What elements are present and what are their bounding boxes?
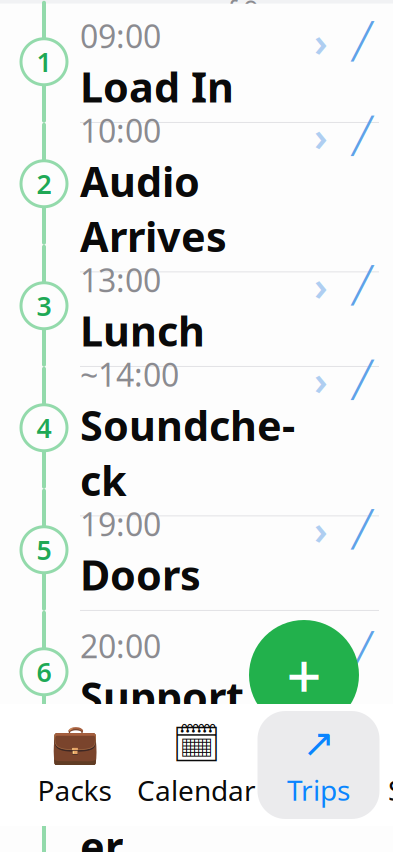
staticText: ~14:00	[80, 353, 179, 396]
staticText: Settings	[388, 771, 393, 809]
staticText: ›	[314, 109, 328, 162]
staticText: ›	[314, 15, 328, 68]
staticText: 3	[36, 288, 51, 323]
staticText: Doors	[80, 547, 201, 602]
staticText: 🗓	[172, 721, 221, 765]
button[interactable]: Add schedule item	[249, 620, 359, 730]
staticText: ↗	[302, 721, 334, 765]
button[interactable]: 💼	[13, 711, 135, 819]
staticText: 5	[36, 532, 51, 567]
button[interactable]: ↗	[257, 711, 379, 819]
staticText: ╱	[352, 631, 373, 671]
button[interactable]: 09:00	[72, 1, 379, 123]
staticText: Calendar	[137, 771, 256, 809]
staticText: ›	[314, 625, 328, 678]
staticText: +	[286, 634, 321, 716]
staticText: 7	[36, 776, 51, 811]
staticText: Day 3 of 9	[211, 0, 281, 28]
staticText: 20:00	[80, 625, 161, 667]
button[interactable]: 20:30	[72, 733, 379, 852]
staticText: Packs	[37, 771, 111, 809]
staticText: 6	[36, 654, 51, 689]
button[interactable]: 13:00	[72, 245, 379, 367]
staticText: ›	[314, 353, 328, 406]
button[interactable]: 19:00	[72, 489, 379, 611]
staticText: ╱	[352, 360, 373, 399]
staticText: ╱	[352, 21, 373, 61]
staticText: 4	[36, 410, 51, 445]
staticText: Changeover	[80, 764, 299, 852]
staticText: ╱	[352, 509, 373, 549]
staticText: Soundcheck	[80, 398, 295, 507]
staticText: ›	[314, 503, 328, 556]
staticText: Trips	[287, 771, 350, 809]
button[interactable]: 🗓	[135, 711, 257, 819]
staticText: Load In	[80, 59, 234, 114]
staticText: 10:00	[80, 109, 161, 152]
staticText: ╱	[352, 265, 373, 305]
staticText: 1	[36, 44, 51, 79]
button[interactable]: ⚙	[379, 711, 393, 819]
staticText: Audio Arrives	[80, 154, 227, 263]
staticText: ›	[314, 259, 328, 312]
staticText: Lunch	[80, 303, 205, 358]
staticText: 09:00	[80, 15, 161, 57]
button[interactable]: ~14:00	[72, 367, 379, 489]
staticText: 💼	[50, 721, 98, 765]
staticText: 19:00	[80, 503, 161, 545]
staticText: ›	[314, 719, 328, 772]
staticText: ╱	[352, 116, 373, 155]
button[interactable]: 10:00	[72, 123, 379, 245]
staticText: Support	[80, 669, 244, 724]
staticText: 13:00	[80, 259, 161, 301]
staticText: 2	[36, 166, 51, 201]
staticText: 20:30	[80, 719, 161, 762]
button[interactable]: 20:00	[72, 611, 379, 733]
